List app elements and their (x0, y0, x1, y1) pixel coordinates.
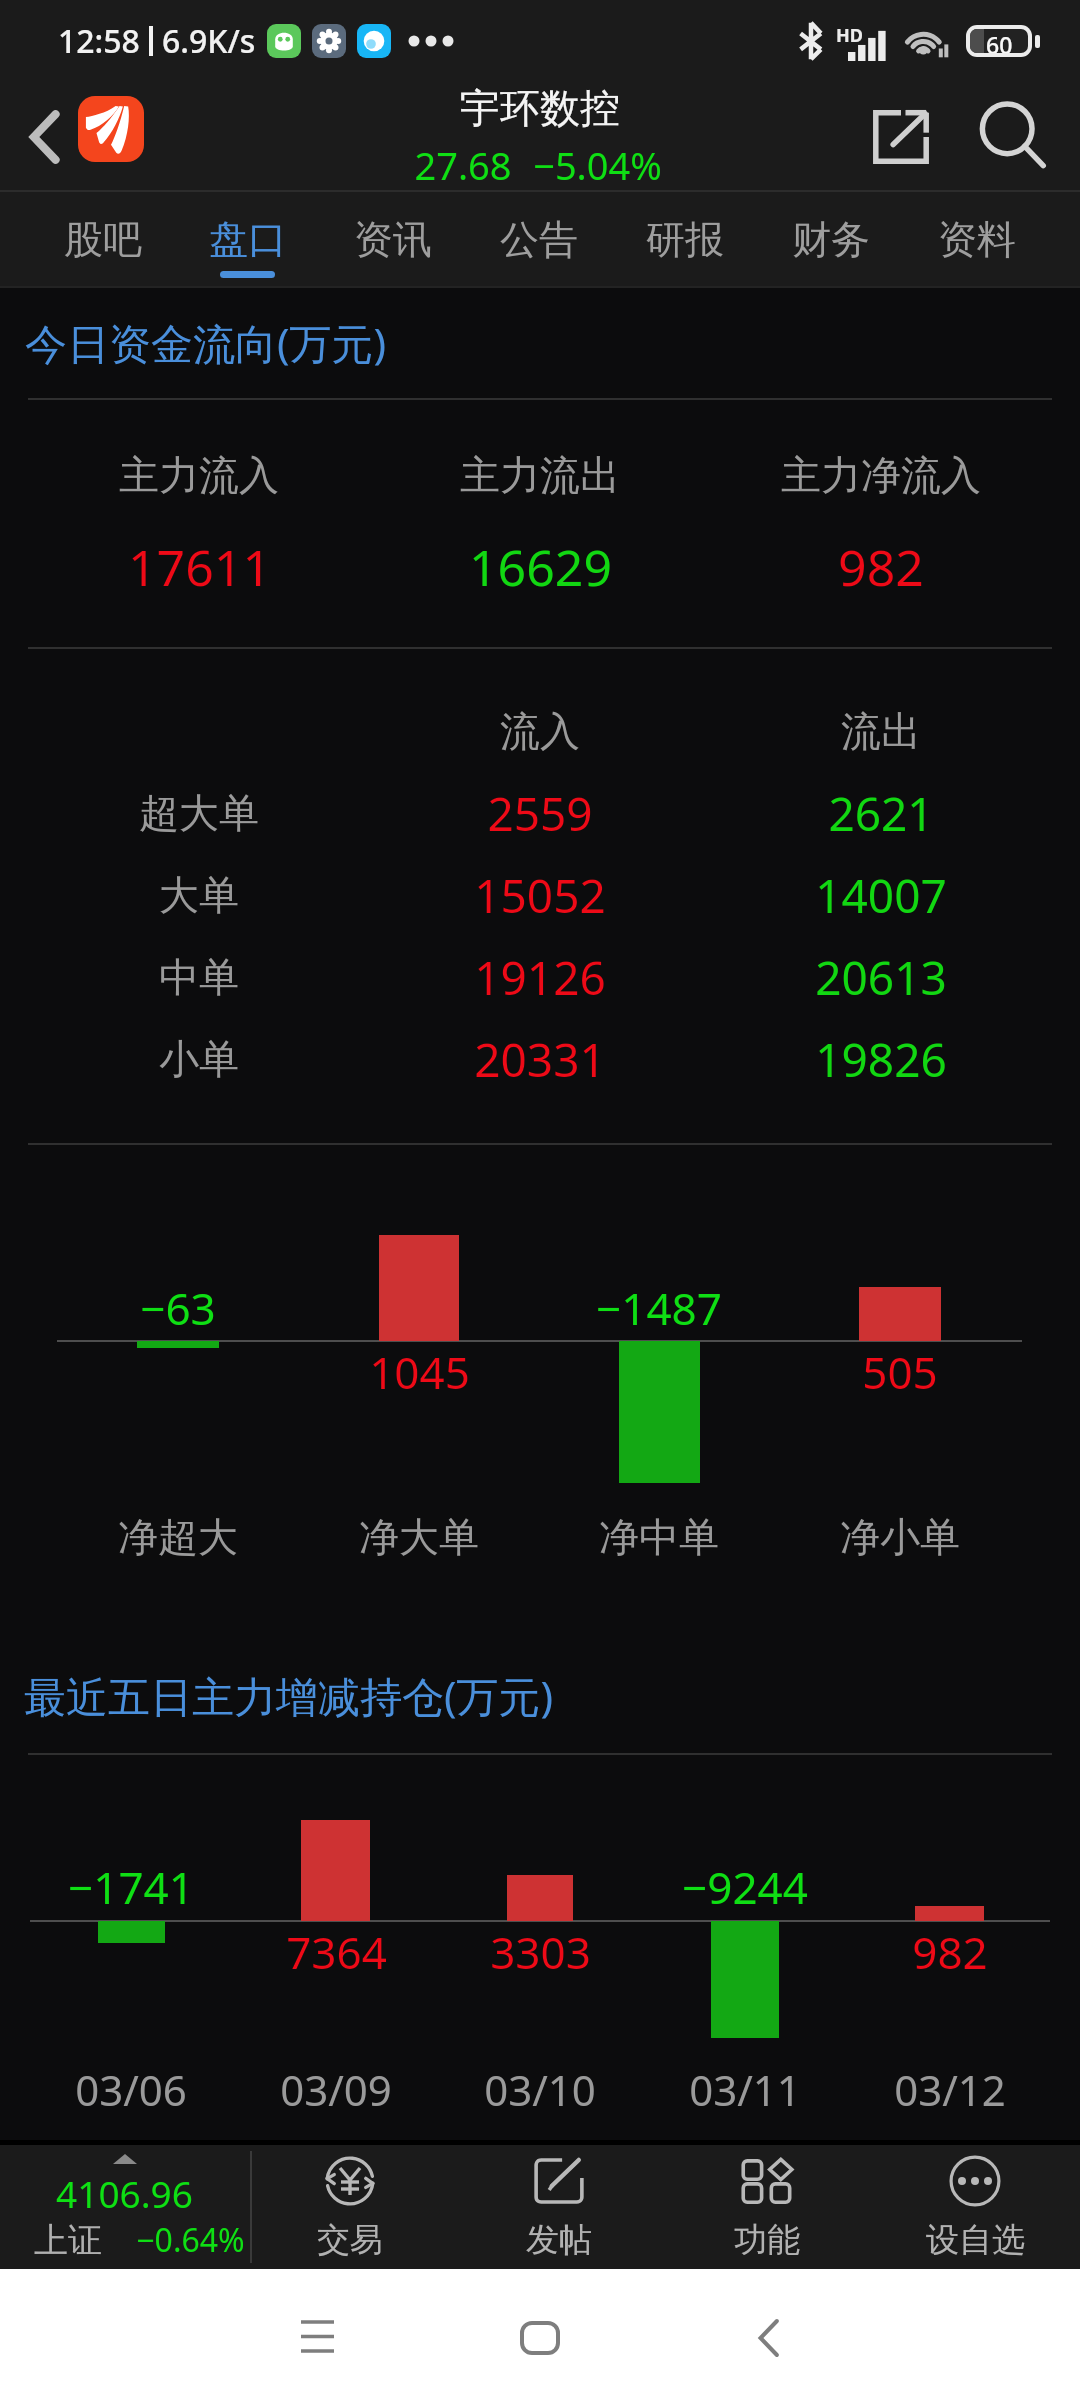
button[interactable]: 公告 (466, 192, 612, 288)
button[interactable]: 股吧 (30, 192, 175, 288)
button[interactable]: 财务 (758, 192, 904, 288)
staticText: 发帖 (526, 2219, 592, 2261)
button[interactable]: Back (708, 2269, 828, 2400)
staticText: 流出 (841, 706, 921, 756)
staticText: 宇环数控 (460, 83, 620, 133)
staticText: 净超大 (118, 1512, 238, 1562)
staticText: 2559 (487, 782, 593, 845)
staticText: 交易 (317, 2219, 383, 2261)
staticText: 3303 (490, 1922, 591, 1982)
staticText: 大单 (159, 870, 239, 920)
button[interactable]: 设自选 (875, 2145, 1075, 2269)
staticText: 设自选 (926, 2219, 1025, 2261)
button[interactable]: 功能 (667, 2145, 867, 2269)
staticText: 19126 (474, 946, 606, 1009)
staticText: 982 (912, 1922, 988, 1982)
staticText: 505 (862, 1342, 938, 1402)
staticText: 6.9K/s (162, 19, 256, 63)
staticText: 20331 (474, 1028, 606, 1091)
button[interactable]: 4106.96 (0, 2145, 250, 2269)
button[interactable]: 发帖 (459, 2145, 659, 2269)
staticText: 03/10 (484, 2061, 596, 2118)
staticText: 盘口 (209, 215, 287, 264)
staticText: 小单 (159, 1034, 239, 1084)
button[interactable]: 研报 (612, 192, 758, 288)
staticText: 982 (838, 533, 924, 601)
staticText: 03/06 (75, 2061, 187, 2118)
button[interactable]: Back (6, 82, 84, 192)
staticText: HD (836, 23, 863, 48)
staticText: −9244 (682, 1857, 808, 1917)
staticText: 净中单 (599, 1512, 719, 1562)
staticText: −1741 (68, 1857, 194, 1917)
button[interactable]: Recents (257, 2269, 377, 2400)
staticText: 2621 (828, 782, 934, 845)
staticText: 12:58 (58, 19, 140, 63)
button[interactable]: Home (480, 2269, 600, 2400)
staticText: 4106.96 (56, 2168, 193, 2218)
staticText: 资料 (938, 215, 1016, 264)
button[interactable]: 资讯 (320, 192, 466, 288)
staticText: 7364 (286, 1922, 387, 1982)
staticText: 16629 (469, 533, 612, 601)
staticText: 净小单 (840, 1512, 960, 1562)
staticText: −5.04% (533, 139, 662, 191)
staticText: 03/12 (894, 2061, 1006, 2118)
staticText: 股吧 (64, 215, 142, 264)
button[interactable]: Search (958, 82, 1070, 192)
staticText: 03/11 (689, 2061, 801, 2118)
staticText: 上证 (34, 2219, 102, 2262)
staticText: 15052 (474, 864, 606, 927)
staticText: 20613 (815, 946, 947, 1009)
staticText: −63 (140, 1278, 216, 1338)
button[interactable]: App logo (78, 96, 144, 162)
staticText: 今日资金流向(万元) (25, 314, 387, 371)
staticText: −0.64% (136, 2218, 245, 2262)
staticText: 公告 (500, 215, 578, 264)
staticText: 17611 (128, 533, 271, 601)
button[interactable]: 盘口 (175, 192, 320, 288)
button[interactable]: Share (847, 82, 955, 192)
staticText: 净大单 (359, 1512, 479, 1562)
button[interactable]: 资料 (904, 192, 1050, 288)
staticText: 60 (986, 29, 1013, 53)
staticText: 主力流入 (119, 450, 279, 500)
staticText: 1045 (369, 1342, 470, 1402)
staticText: 研报 (646, 215, 724, 264)
staticText: 资讯 (354, 215, 432, 264)
staticText: 超大单 (139, 788, 259, 838)
staticText: 最近五日主力增减持仓(万元) (24, 1667, 554, 1724)
staticText: 财务 (792, 215, 870, 264)
staticText: 主力流出 (460, 450, 620, 500)
staticText: 03/09 (280, 2061, 392, 2118)
staticText: 流入 (500, 706, 580, 756)
staticText: 主力净流入 (781, 450, 981, 500)
staticText: −1487 (596, 1278, 722, 1338)
button[interactable]: 交易 (250, 2145, 450, 2269)
staticText: 19826 (815, 1028, 947, 1091)
staticText: 14007 (815, 864, 947, 927)
staticText: 中单 (159, 952, 239, 1002)
staticText: 功能 (734, 2219, 800, 2261)
staticText: 27.68 (414, 139, 512, 191)
